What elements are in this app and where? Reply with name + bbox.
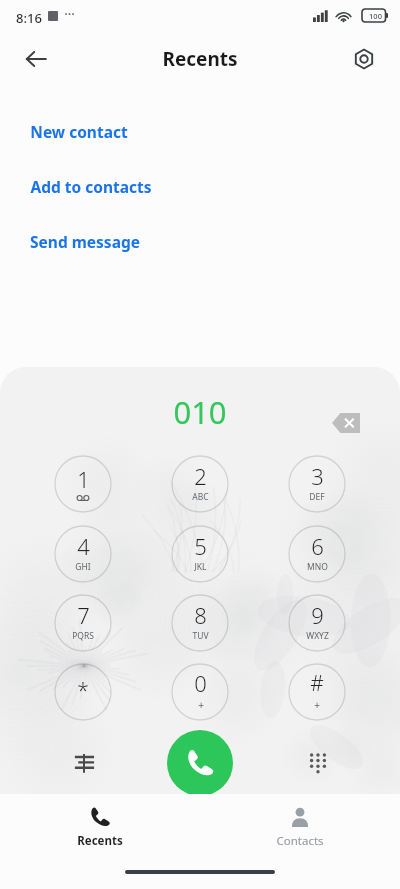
staticText: JKL	[194, 561, 207, 573]
staticText: WXYZ	[306, 630, 329, 642]
button[interactable]: 2	[170, 454, 230, 514]
button[interactable]: 1	[53, 454, 113, 514]
staticText: 9	[311, 600, 324, 630]
staticText: +	[198, 698, 204, 712]
staticText: ABC	[192, 491, 209, 503]
staticText: MNO	[307, 561, 328, 573]
staticText: 6	[311, 531, 324, 561]
button[interactable]: Call	[167, 730, 233, 794]
staticText: 0	[194, 668, 207, 698]
button[interactable]: 6	[287, 524, 347, 584]
staticText: 100	[369, 11, 382, 21]
staticText: Add to contacts	[30, 176, 152, 197]
staticText: 1	[77, 464, 90, 494]
button[interactable]: 0	[170, 662, 230, 722]
button[interactable]: 5	[170, 524, 230, 584]
button[interactable]: 3	[287, 454, 347, 514]
button[interactable]: Back	[16, 39, 56, 79]
staticText: ···	[64, 5, 75, 23]
button[interactable]: Dialpad	[292, 736, 344, 788]
staticText: *	[77, 676, 89, 705]
button[interactable]: 4	[53, 524, 113, 584]
button[interactable]: 8	[170, 593, 230, 653]
button[interactable]: New contact	[0, 104, 400, 159]
staticText: 7	[77, 600, 90, 630]
button[interactable]: #	[287, 662, 347, 722]
staticText: 8	[194, 600, 207, 630]
button[interactable]: Backspace	[322, 399, 370, 447]
staticText: 5	[194, 531, 207, 561]
staticText: +	[314, 698, 320, 712]
button[interactable]: 9	[287, 593, 347, 653]
button[interactable]: Contacts	[200, 794, 400, 860]
staticText: DEF	[309, 491, 325, 503]
staticText: Recents	[77, 833, 123, 849]
staticText: Recents	[162, 46, 238, 72]
staticText: TUV	[192, 630, 209, 642]
staticText: New contact	[30, 121, 128, 142]
button[interactable]: Recents	[0, 794, 200, 860]
staticText: 3	[311, 461, 324, 491]
button[interactable]: Settings	[344, 39, 384, 79]
button[interactable]: Add to contacts	[0, 159, 400, 214]
staticText: PQRS	[72, 630, 94, 642]
button[interactable]: Send message	[0, 214, 400, 269]
staticText: 4	[77, 531, 90, 561]
staticText: 8:16	[16, 9, 42, 27]
button[interactable]: 7	[53, 593, 113, 653]
staticText: 010	[173, 391, 227, 433]
button[interactable]: Call log options	[58, 736, 110, 788]
staticText: #	[310, 669, 324, 698]
staticText: GHI	[75, 561, 91, 573]
staticText: 2	[194, 461, 207, 491]
staticText: Contacts	[276, 833, 324, 849]
staticText: Send message	[30, 231, 140, 252]
button[interactable]: *	[53, 662, 113, 722]
